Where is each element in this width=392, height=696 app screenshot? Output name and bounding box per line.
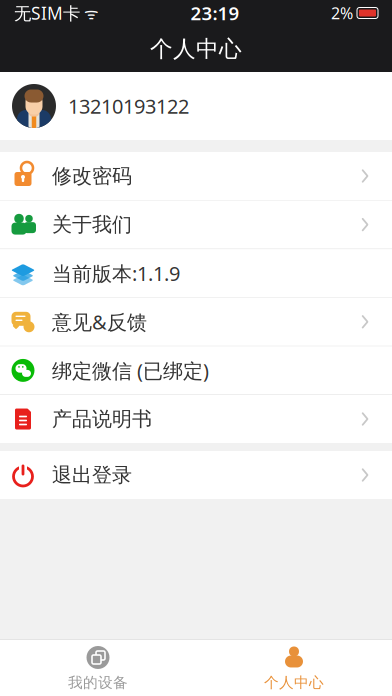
staticText: 产品说明书 <box>52 407 152 431</box>
staticText: 意见&反馈 <box>52 308 147 335</box>
button[interactable]: 当前版本:1.1.9 <box>0 249 392 297</box>
staticText: ᯤ <box>80 2 99 24</box>
staticText: 绑定微信 (已绑定) <box>52 357 209 384</box>
staticText: 修改密码 <box>52 164 132 188</box>
staticText: 我的设备 <box>68 673 128 691</box>
button[interactable]: 退出登录 <box>0 451 392 499</box>
staticText: 个人中心 <box>264 673 324 691</box>
button[interactable]: 意见&反馈 <box>0 298 392 346</box>
staticText: 个人中心 <box>150 35 242 63</box>
staticText: 退出登录 <box>52 463 132 487</box>
button[interactable]: 我的设备 <box>0 640 196 696</box>
button[interactable]: 绑定微信 (已绑定) <box>0 346 392 394</box>
staticText: 23:19 <box>190 1 239 25</box>
staticText: 关于我们 <box>52 212 132 237</box>
staticText: 13210193122 <box>68 93 189 119</box>
staticText: 当前版本:1.1.9 <box>52 260 180 286</box>
staticText: 2% <box>331 2 353 24</box>
button[interactable]: 产品说明书 <box>0 395 392 443</box>
button[interactable]: 修改密码 <box>0 152 392 200</box>
button[interactable]: 13210193122 <box>0 72 392 140</box>
staticText: 无SIM卡 <box>14 1 80 24</box>
button[interactable]: 关于我们 <box>0 201 392 249</box>
button[interactable]: 个人中心 <box>196 640 392 696</box>
